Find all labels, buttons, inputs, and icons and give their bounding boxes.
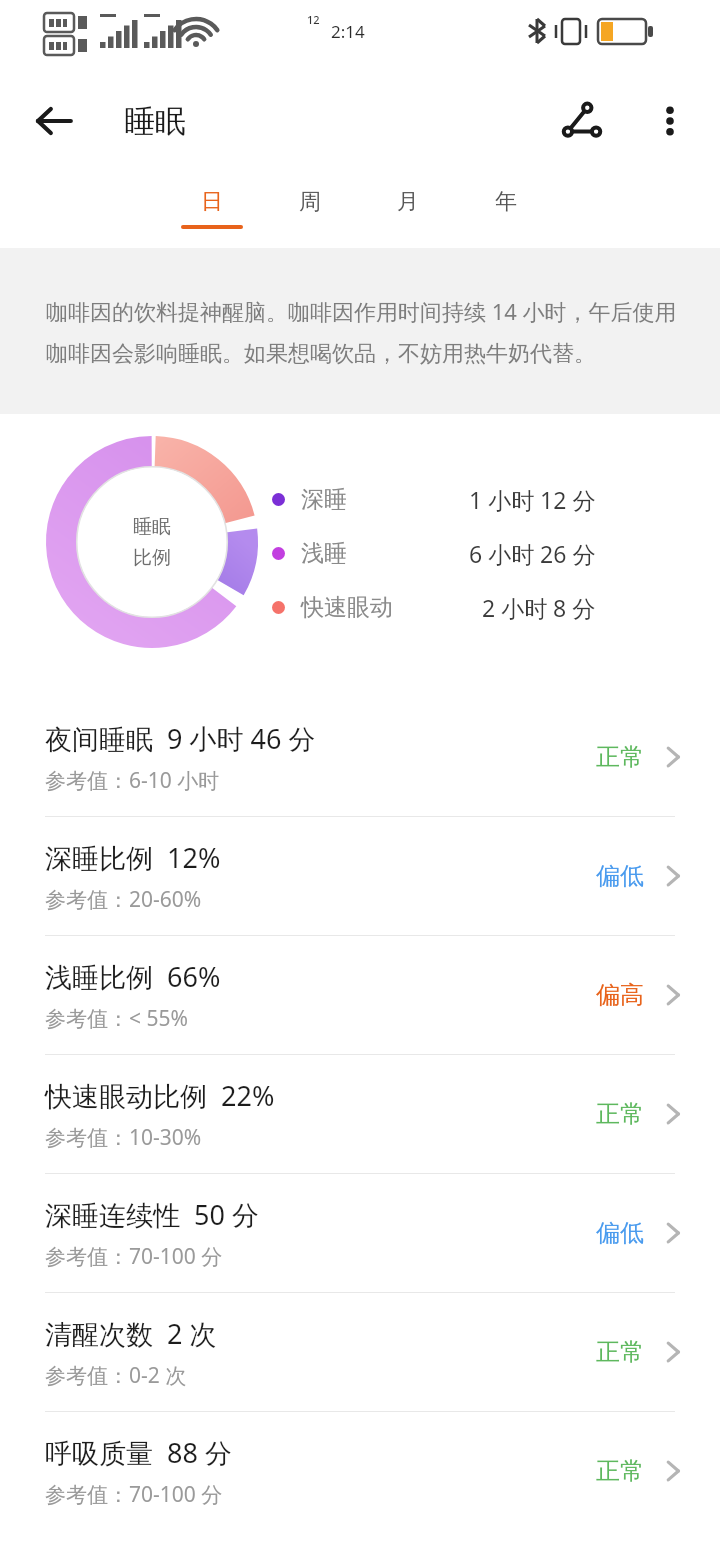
staticText: 比例 bbox=[133, 546, 171, 570]
staticText: 参考值：0-2 次 bbox=[45, 1361, 187, 1390]
button[interactable]: 快速眼动比例 22% bbox=[0, 1055, 720, 1173]
staticText: 清醒次数 2 次 bbox=[45, 1315, 217, 1352]
staticText: 1 小时 12 分 bbox=[469, 484, 596, 515]
button[interactable]: 周 bbox=[276, 178, 344, 248]
staticText: 偏低 bbox=[596, 861, 644, 891]
staticText: 12 bbox=[307, 12, 320, 27]
staticText: 6 小时 26 分 bbox=[469, 538, 596, 569]
button[interactable]: 深睡连续性 50 分 bbox=[0, 1174, 720, 1292]
staticText: 咖啡因的饮料提神醒脑。咖啡因作用时间持续 14 小时，午后使用咖啡因会影响睡眠。… bbox=[46, 296, 680, 367]
staticText: 2:14 bbox=[331, 20, 365, 43]
button[interactable]: 月 bbox=[374, 178, 442, 248]
staticText: 参考值：70-100 分 bbox=[45, 1480, 223, 1509]
staticText: 睡眠 bbox=[133, 515, 171, 539]
staticText: 月 bbox=[397, 188, 419, 216]
staticText: 快速眼动 bbox=[301, 593, 393, 622]
staticText: 参考值：10-30% bbox=[45, 1123, 202, 1152]
staticText: 正常 bbox=[596, 742, 644, 772]
staticText: 浅睡 bbox=[301, 539, 347, 568]
staticText: 年 bbox=[495, 188, 517, 216]
staticText: 参考值：20-60% bbox=[45, 885, 202, 914]
staticText: 参考值：6-10 小时 bbox=[45, 766, 220, 795]
staticText: 偏高 bbox=[596, 980, 644, 1010]
button[interactable]: Share bbox=[552, 91, 612, 151]
staticText: 快速眼动比例 22% bbox=[45, 1077, 275, 1114]
staticText: 深睡 bbox=[301, 485, 347, 514]
staticText: 深睡比例 12% bbox=[45, 839, 221, 876]
button[interactable]: 夜间睡眠 9 小时 46 分 bbox=[0, 698, 720, 816]
button[interactable]: 浅睡比例 66% bbox=[0, 936, 720, 1054]
staticText: 周 bbox=[299, 188, 321, 216]
button[interactable]: More options bbox=[642, 93, 698, 149]
staticText: 睡眠 bbox=[124, 102, 186, 141]
staticText: 夜间睡眠 9 小时 46 分 bbox=[45, 720, 316, 757]
button[interactable]: 呼吸质量 88 分 bbox=[0, 1412, 720, 1530]
staticText: 正常 bbox=[596, 1337, 644, 1367]
button[interactable]: 清醒次数 2 次 bbox=[0, 1293, 720, 1411]
staticText: 正常 bbox=[596, 1099, 644, 1129]
staticText: 浅睡比例 66% bbox=[45, 958, 221, 995]
staticText: 参考值：70-100 分 bbox=[45, 1242, 223, 1271]
button[interactable]: 日 bbox=[178, 178, 246, 248]
staticText: 参考值：< 55% bbox=[45, 1004, 188, 1033]
button[interactable]: 年 bbox=[472, 178, 540, 248]
staticText: 日 bbox=[201, 188, 223, 216]
staticText: 偏低 bbox=[596, 1218, 644, 1248]
staticText: 呼吸质量 88 分 bbox=[45, 1434, 232, 1471]
button[interactable]: 深睡比例 12% bbox=[0, 817, 720, 935]
staticText: 2 小时 8 分 bbox=[482, 592, 596, 623]
staticText: 正常 bbox=[596, 1456, 644, 1486]
staticText: 深睡连续性 50 分 bbox=[45, 1196, 259, 1233]
button[interactable]: Back bbox=[26, 93, 82, 149]
